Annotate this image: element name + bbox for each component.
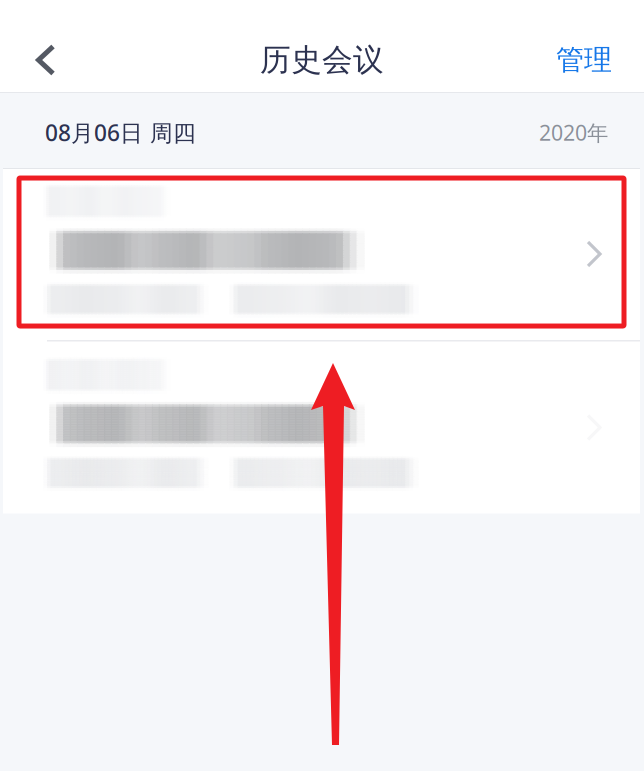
- button[interactable]: [3, 168, 640, 340]
- staticText: 历史会议: [260, 41, 384, 79]
- button[interactable]: [3, 341, 640, 513]
- button[interactable]: Back: [0, 29, 75, 91]
- staticText: 2020年: [539, 118, 608, 147]
- staticText: 08月06日 周四: [45, 117, 196, 147]
- staticText: 管理: [556, 43, 612, 77]
- button[interactable]: 管理: [530, 29, 644, 91]
